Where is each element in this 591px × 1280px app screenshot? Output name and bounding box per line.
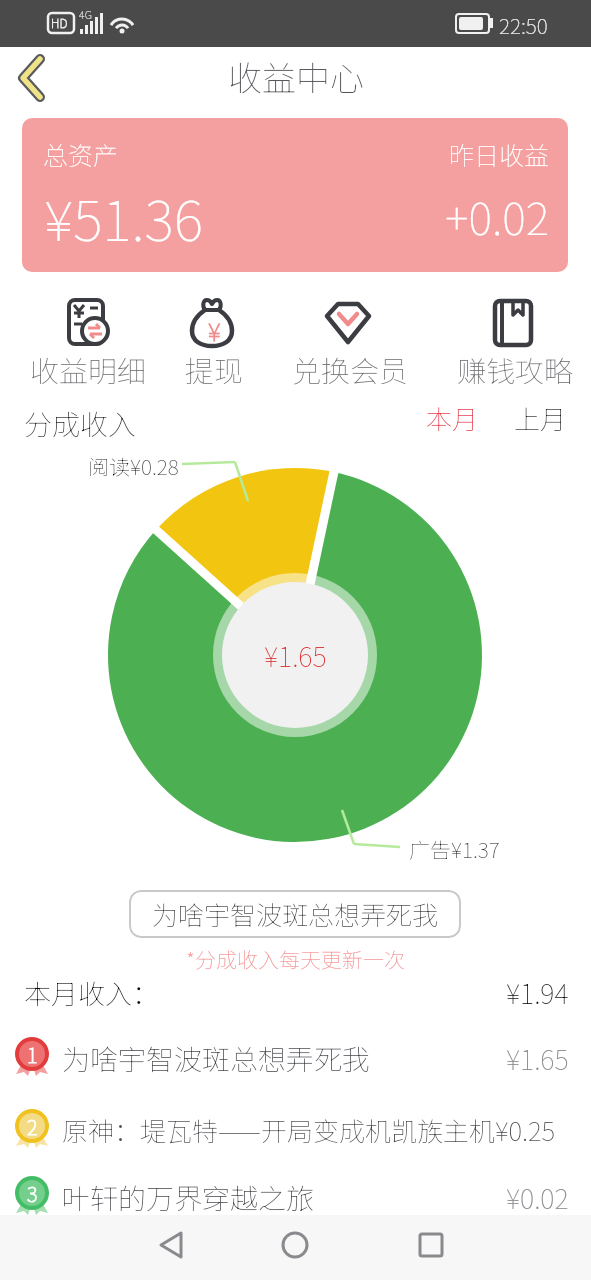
- button[interactable]: 兑换会员: [285, 298, 415, 390]
- staticText: 兑换会员: [292, 348, 409, 390]
- staticText: ¥1.65: [506, 1039, 569, 1078]
- button[interactable]: 3: [0, 1168, 591, 1226]
- staticText: 3: [27, 1179, 38, 1208]
- staticText: 原神：堤瓦特——开局变成机凯族主机¥0.25: [62, 1111, 556, 1149]
- staticText: 总资产: [43, 136, 119, 172]
- staticText: ¥1.65: [264, 636, 327, 675]
- staticText: 广告¥1.37: [409, 834, 500, 864]
- staticText: ¥51.36: [44, 176, 203, 257]
- staticText: 为啥宇智波斑总想弄死我: [62, 1038, 371, 1079]
- staticText: 分成收入: [24, 403, 137, 444]
- button[interactable]: ¥: [149, 298, 279, 390]
- staticText: ¥0.02: [506, 1178, 569, 1217]
- button[interactable]: [269, 1219, 321, 1271]
- staticText: *分成收入每天更新一次: [186, 944, 405, 974]
- staticText: 赚钱攻略: [457, 348, 574, 390]
- button[interactable]: [146, 1219, 198, 1271]
- button[interactable]: 为啥宇智波斑总想弄死我: [129, 890, 461, 938]
- staticText: 提现: [185, 348, 244, 390]
- staticText: ¥1.94: [506, 973, 569, 1012]
- staticText: HD: [51, 14, 68, 31]
- button[interactable]: 总资产: [22, 118, 568, 272]
- staticText: 叶轩的万界穿越之旅: [62, 1177, 315, 1218]
- button[interactable]: 2: [0, 1101, 591, 1159]
- button[interactable]: 1: [0, 1029, 591, 1087]
- staticText: 2: [27, 1112, 38, 1141]
- button[interactable]: [10, 53, 58, 105]
- staticText: +0.02: [445, 183, 550, 248]
- staticText: ¥: [208, 313, 221, 348]
- staticText: 4G: [79, 6, 93, 22]
- button[interactable]: 上月: [503, 395, 578, 441]
- staticText: 为啥宇智波斑总想弄死我: [152, 895, 439, 933]
- staticText: 本月: [426, 399, 479, 437]
- button[interactable]: [405, 1219, 457, 1271]
- staticText: 22:50: [499, 10, 548, 40]
- staticText: 收益中心: [228, 52, 364, 101]
- staticText: 1: [27, 1040, 38, 1069]
- staticText: 阅读¥0.28: [88, 451, 179, 481]
- staticText: 本月收入：: [24, 973, 159, 1012]
- staticText: 上月: [514, 399, 567, 437]
- button[interactable]: 赚钱攻略: [450, 298, 580, 390]
- staticText: 收益明细: [30, 348, 147, 390]
- staticText: 昨日收益: [449, 136, 550, 172]
- button[interactable]: 本月: [415, 395, 490, 441]
- button[interactable]: 收益明细: [23, 298, 153, 390]
